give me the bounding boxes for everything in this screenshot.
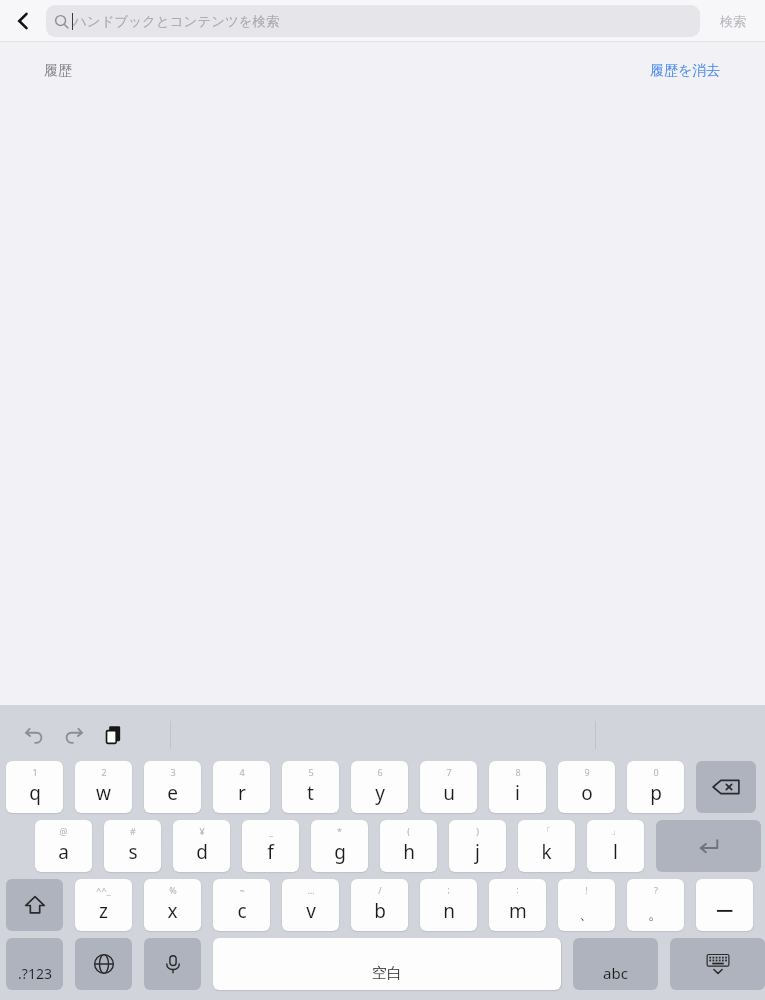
staticText: ~ bbox=[239, 884, 245, 896]
button[interactable]: 空白 bbox=[213, 938, 561, 990]
button[interactable]: @ bbox=[35, 820, 92, 872]
staticText: 、 bbox=[579, 905, 594, 924]
staticText: x bbox=[167, 898, 178, 924]
staticText: u bbox=[443, 780, 455, 806]
staticText: p bbox=[650, 780, 662, 806]
staticText: # bbox=[130, 825, 136, 837]
staticText: 8 bbox=[515, 766, 521, 778]
staticText: s bbox=[128, 839, 138, 865]
button[interactable]: ： bbox=[489, 879, 546, 931]
button[interactable]: Change language bbox=[75, 938, 132, 990]
staticText: % bbox=[169, 884, 177, 896]
button[interactable]: Back bbox=[0, 0, 46, 42]
staticText: v bbox=[306, 898, 316, 924]
staticText: k bbox=[541, 839, 552, 865]
staticText: … bbox=[307, 884, 315, 896]
button[interactable]: ¥ bbox=[173, 820, 230, 872]
button[interactable]: 履歴を消去 bbox=[650, 62, 721, 80]
staticText: r bbox=[238, 780, 246, 806]
button[interactable]: ) bbox=[449, 820, 506, 872]
button[interactable]: 1 bbox=[6, 761, 63, 813]
button[interactable]: .?123 bbox=[6, 938, 63, 990]
staticText: q bbox=[29, 780, 41, 806]
staticText: c bbox=[237, 898, 247, 924]
staticText: * bbox=[337, 825, 342, 837]
button[interactable]: Backspace bbox=[696, 761, 756, 813]
staticText: ! bbox=[585, 884, 588, 896]
button[interactable]: ハンドブックとコンテンツを検索 bbox=[46, 5, 700, 37]
button[interactable]: 検索 bbox=[700, 0, 765, 42]
staticText: m bbox=[509, 898, 527, 924]
button[interactable]: * bbox=[311, 820, 368, 872]
button[interactable]: Redo bbox=[58, 719, 90, 751]
button[interactable]: 「 bbox=[518, 820, 575, 872]
button[interactable]: / bbox=[351, 879, 408, 931]
staticText: ： bbox=[513, 884, 522, 895]
button[interactable]: abc bbox=[573, 938, 658, 990]
button[interactable]: 2 bbox=[75, 761, 132, 813]
button[interactable]: 4 bbox=[213, 761, 270, 813]
staticText: ) bbox=[476, 825, 479, 837]
button[interactable]: Undo bbox=[18, 719, 50, 751]
staticText: 0 bbox=[653, 766, 659, 778]
button[interactable]: 」 bbox=[587, 820, 644, 872]
button[interactable]: ； bbox=[420, 879, 477, 931]
button[interactable]: Shift bbox=[6, 879, 63, 931]
staticText: 1 bbox=[32, 766, 38, 778]
staticText: h bbox=[403, 839, 415, 865]
button[interactable]: 3 bbox=[144, 761, 201, 813]
staticText: 9 bbox=[584, 766, 590, 778]
staticText: e bbox=[167, 780, 178, 806]
staticText: 「 bbox=[542, 825, 551, 836]
button[interactable]: 5 bbox=[282, 761, 339, 813]
staticText: 履歴 bbox=[44, 62, 72, 80]
button[interactable]: ! bbox=[558, 879, 615, 931]
staticText: ^^_ bbox=[96, 884, 111, 896]
button[interactable]: Hide keyboard bbox=[670, 938, 765, 990]
staticText: b bbox=[374, 898, 386, 924]
button[interactable]: ー bbox=[696, 879, 753, 931]
staticText: .?123 bbox=[18, 964, 52, 983]
staticText: 」 bbox=[611, 825, 620, 836]
button[interactable]: # bbox=[104, 820, 161, 872]
staticText: abc bbox=[603, 963, 628, 983]
staticText: _ bbox=[269, 825, 273, 837]
staticText: 5 bbox=[308, 766, 314, 778]
staticText: 検索 bbox=[720, 13, 746, 29]
staticText: ； bbox=[444, 884, 453, 895]
button[interactable]: ^^_ bbox=[75, 879, 132, 931]
staticText: ー bbox=[715, 900, 734, 924]
staticText: d bbox=[196, 839, 208, 865]
staticText: o bbox=[581, 780, 593, 806]
staticText: ? bbox=[654, 884, 658, 896]
button[interactable]: 0 bbox=[627, 761, 684, 813]
staticText: g bbox=[334, 839, 346, 865]
staticText: @ bbox=[59, 825, 68, 837]
button[interactable]: Paste bbox=[98, 719, 130, 751]
staticText: 3 bbox=[170, 766, 176, 778]
button[interactable]: % bbox=[144, 879, 201, 931]
staticText: / bbox=[378, 884, 382, 896]
button[interactable]: 9 bbox=[558, 761, 615, 813]
button[interactable]: ? bbox=[627, 879, 684, 931]
staticText: y bbox=[375, 780, 385, 806]
button[interactable]: ( bbox=[380, 820, 437, 872]
staticText: 空白 bbox=[372, 964, 402, 983]
staticText: n bbox=[443, 898, 455, 924]
staticText: ハンドブックとコンテンツを検索 bbox=[73, 13, 280, 30]
button[interactable]: … bbox=[282, 879, 339, 931]
button[interactable]: 8 bbox=[489, 761, 546, 813]
button[interactable]: ~ bbox=[213, 879, 270, 931]
staticText: f bbox=[267, 839, 274, 865]
button[interactable]: Enter bbox=[656, 820, 761, 872]
staticText: 6 bbox=[377, 766, 383, 778]
staticText: l bbox=[613, 839, 618, 865]
staticText: 履歴を消去 bbox=[650, 62, 721, 80]
staticText: ( bbox=[407, 825, 410, 837]
button[interactable]: _ bbox=[242, 820, 299, 872]
button[interactable]: 6 bbox=[351, 761, 408, 813]
button[interactable]: 7 bbox=[420, 761, 477, 813]
staticText: w bbox=[96, 780, 111, 806]
staticText: j bbox=[475, 839, 480, 865]
button[interactable]: Voice input bbox=[144, 938, 201, 990]
